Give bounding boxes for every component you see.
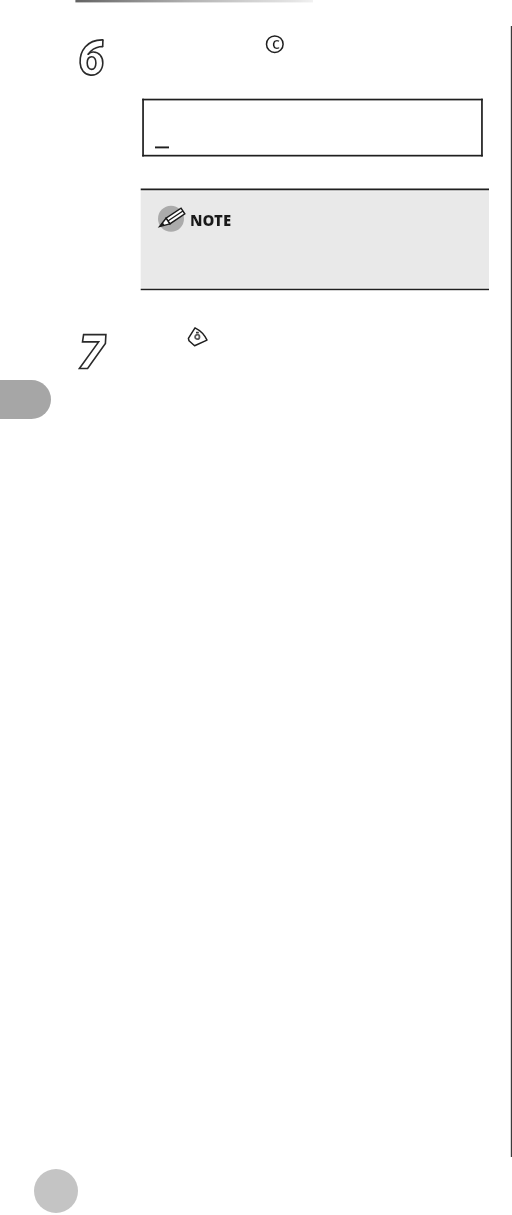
button[interactable]: Page number	[34, 1169, 78, 1213]
button[interactable]: Step 7	[78, 333, 107, 369]
staticText: c	[272, 36, 280, 50]
button[interactable]: Step 6	[78, 38, 105, 76]
button[interactable]: NOTE	[141, 191, 489, 287]
button[interactable]: Tag icon	[186, 326, 209, 349]
staticText: NOTE	[190, 210, 232, 230]
button[interactable]: Callout c	[266, 36, 284, 54]
button[interactable]: Chapter tab	[0, 380, 51, 419]
